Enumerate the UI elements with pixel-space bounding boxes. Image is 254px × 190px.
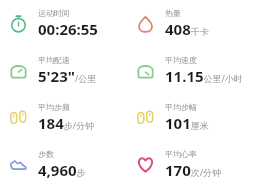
staticText: 热量 [165,8,181,18]
staticText: 184步/分钟 [38,113,95,133]
button[interactable]: Calories [127,0,254,47]
other: Average speed [135,60,156,81]
other: Average heart rate [135,154,156,175]
other: Average stride [135,107,156,128]
button[interactable]: Average heart rate [127,141,254,188]
other: Steps [8,154,29,175]
staticText: 平均步频 [38,102,70,112]
other: Calories [135,13,156,34]
staticText: 00:26:55 [38,19,98,39]
staticText: 步数 [38,149,54,159]
staticText: 4,960步 [38,160,86,180]
button[interactable]: Average pace [0,47,127,94]
button[interactable]: Average speed [127,47,254,94]
other: Average cadence [8,107,29,128]
staticText: 运动时间 [38,8,70,18]
button[interactable]: Average cadence [0,94,127,141]
staticText: 平均配速 [38,55,70,65]
staticText: 5'23"/公里 [38,66,97,86]
button[interactable]: Average stride [127,94,254,141]
staticText: 170次/分钟 [165,160,222,180]
button[interactable]: Steps [0,141,127,188]
staticText: 11.15公里/小时 [165,66,243,86]
staticText: 101厘米 [165,113,209,133]
staticText: 平均步幅 [165,102,197,112]
other: Workout duration [8,13,29,34]
staticText: 平均心率 [165,149,197,159]
other: Average pace [8,60,29,81]
staticText: 平均速度 [165,55,197,65]
staticText: 408千卡 [165,19,209,39]
button[interactable]: Workout duration [0,0,127,47]
